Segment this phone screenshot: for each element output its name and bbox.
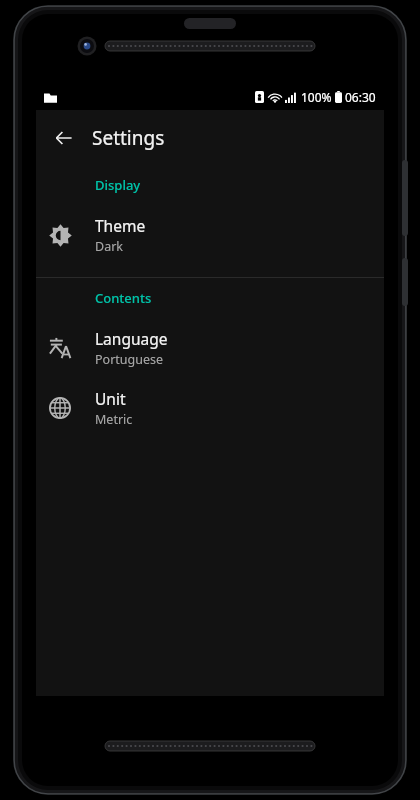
button[interactable]: Theme	[36, 205, 384, 265]
button[interactable]: Unit	[36, 378, 384, 438]
staticText: Theme	[95, 215, 146, 236]
staticText: 100%	[301, 89, 332, 105]
button[interactable]: Language	[36, 318, 384, 378]
staticText: 06:30	[345, 89, 376, 105]
staticText: Display	[95, 176, 141, 194]
button[interactable]: Back	[46, 120, 82, 156]
staticText: Settings	[92, 125, 165, 151]
staticText: Language	[95, 328, 168, 349]
staticText: Portuguese	[95, 351, 164, 368]
staticText: Metric	[95, 411, 133, 428]
staticText: Dark	[95, 238, 123, 255]
staticText: Contents	[95, 289, 152, 307]
staticText: Unit	[95, 388, 126, 409]
